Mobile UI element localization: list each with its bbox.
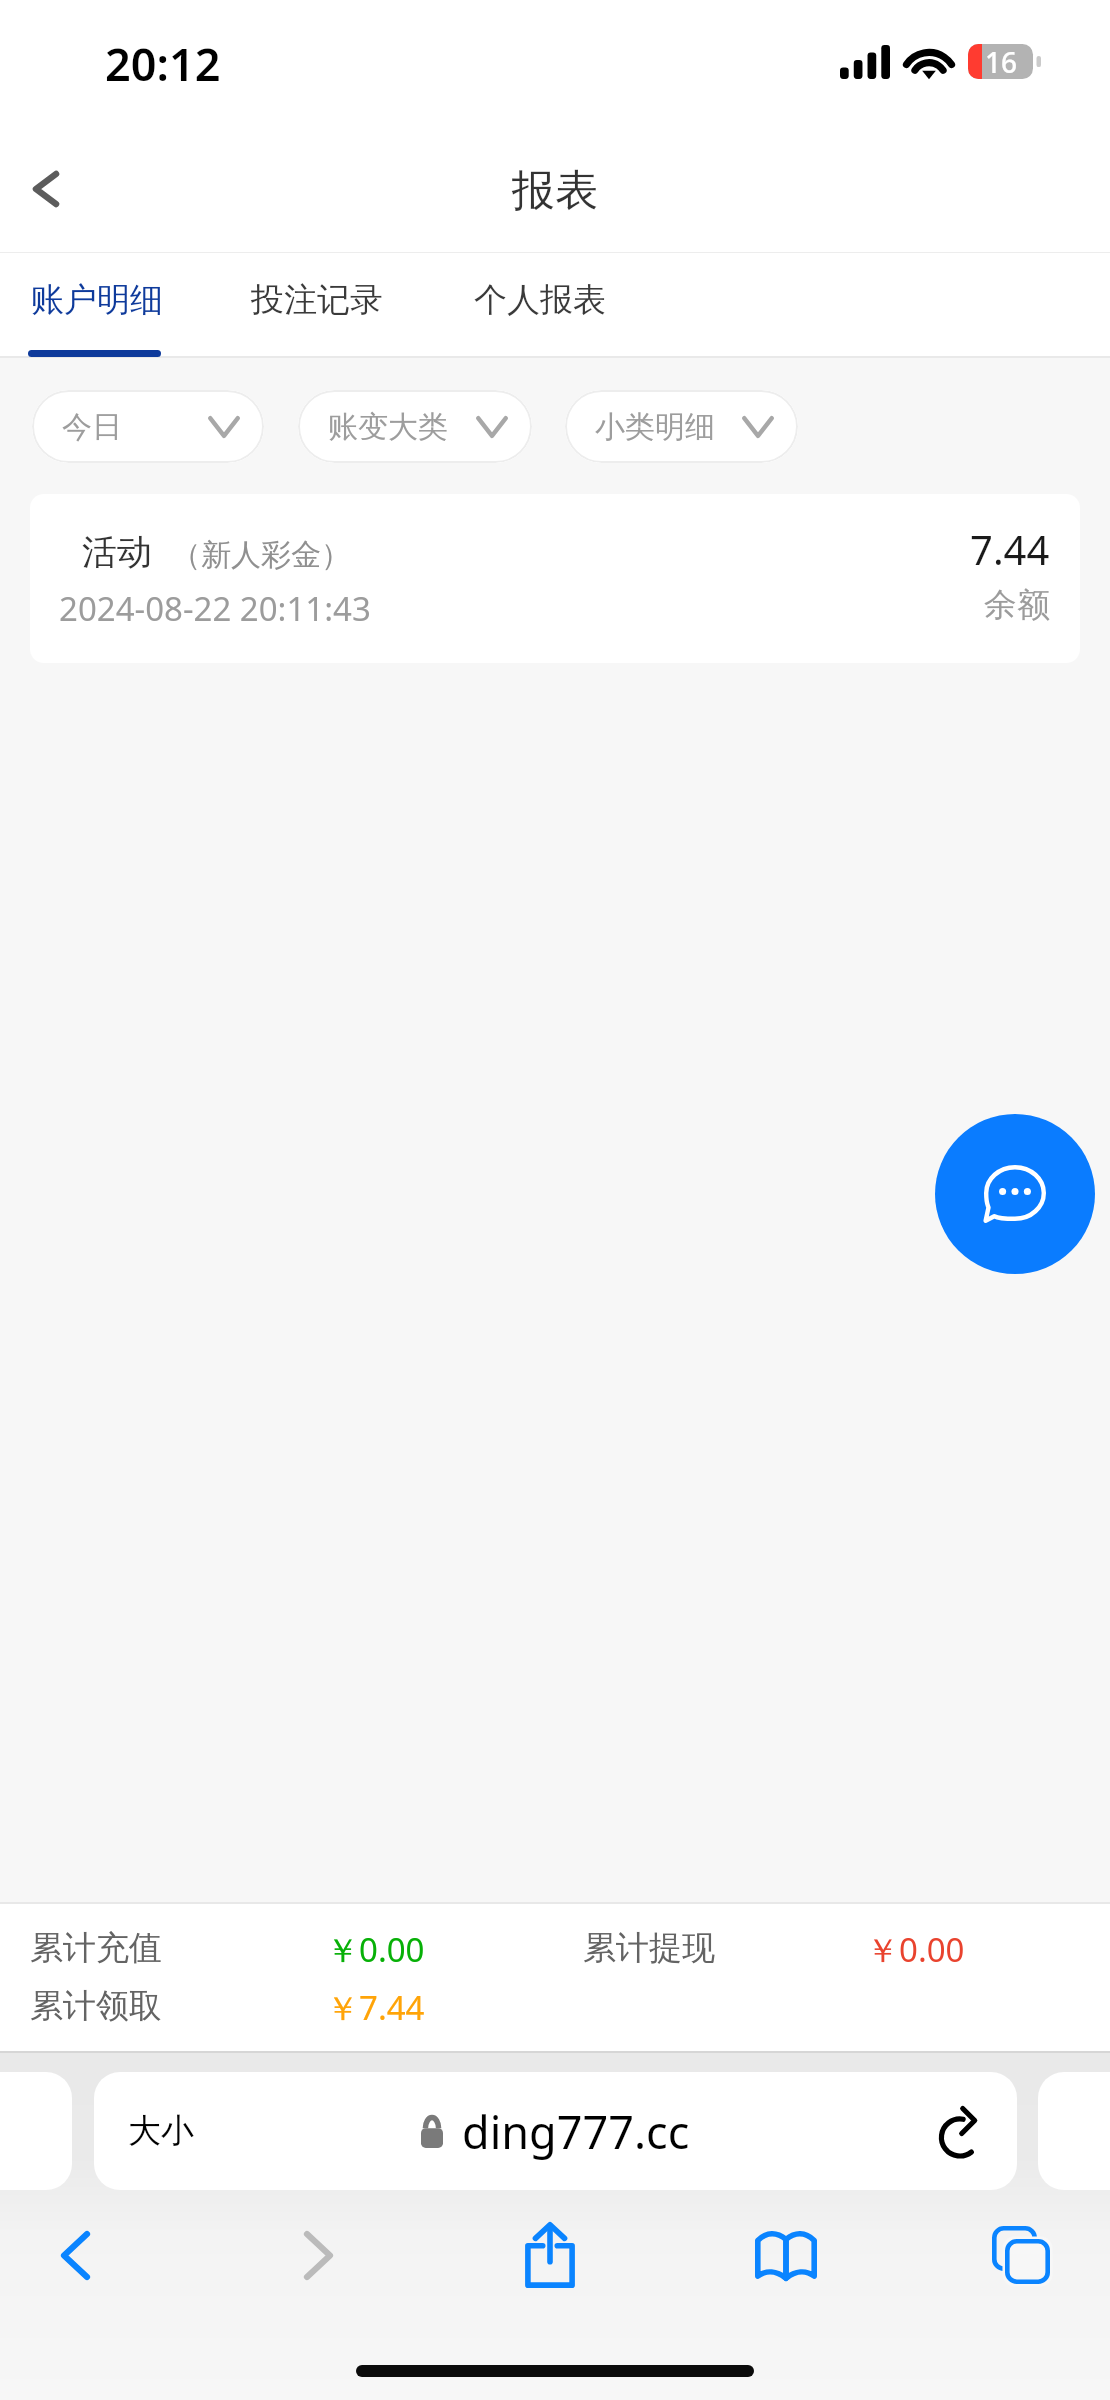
button[interactable]: 活动 <box>30 494 1080 663</box>
button[interactable]: Share <box>500 2205 600 2305</box>
button[interactable]: 今日 <box>32 390 264 463</box>
staticText: 累计充值 <box>30 1927 162 1969</box>
staticText: 16 <box>985 43 1018 78</box>
staticText: 余额 <box>984 584 1050 626</box>
staticText: 账户明细 <box>31 279 163 321</box>
button[interactable]: 小类明细 <box>565 390 798 463</box>
staticText: 账变大类 <box>328 408 448 446</box>
staticText: ding777.cc <box>462 2101 690 2162</box>
staticText: 今日 <box>62 408 122 446</box>
button[interactable]: Back <box>0 143 92 235</box>
staticText: 20:12 <box>105 33 221 94</box>
staticText: 投注记录 <box>251 279 383 321</box>
button[interactable]: 大小 <box>112 2092 210 2170</box>
button[interactable]: Back <box>25 2205 125 2305</box>
button[interactable]: 账变大类 <box>298 390 532 463</box>
staticText: ￥0.00 <box>326 1927 425 1972</box>
staticText: 报表 <box>512 164 598 218</box>
staticText: （新人彩金） <box>171 536 351 574</box>
staticText: 7.44 <box>970 522 1050 576</box>
button[interactable]: Forward <box>268 2205 368 2305</box>
button[interactable]: 个人报表 <box>458 263 622 337</box>
button[interactable]: 账户明细 <box>15 263 179 337</box>
staticText: 活动 <box>82 530 152 574</box>
staticText: 累计提现 <box>583 1927 715 1969</box>
staticText: 大小 <box>128 2110 194 2152</box>
button[interactable]: 投注记录 <box>235 263 399 337</box>
button[interactable]: Reload <box>933 2101 993 2161</box>
button[interactable]: Bookmarks <box>736 2205 836 2305</box>
staticText: 累计领取 <box>30 1985 162 2027</box>
staticText: 2024-08-22 20:11:43 <box>59 586 371 631</box>
button[interactable]: Tabs <box>971 2205 1071 2305</box>
staticText: 小类明细 <box>595 408 715 446</box>
button[interactable]: 大小 <box>94 2072 1017 2190</box>
staticText: ￥7.44 <box>326 1985 425 2030</box>
staticText: 个人报表 <box>474 279 606 321</box>
staticText: ￥0.00 <box>866 1927 965 1972</box>
button[interactable]: Customer service chat <box>935 1114 1095 1274</box>
